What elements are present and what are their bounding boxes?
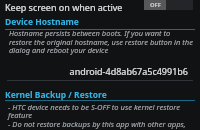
staticText: - HTC device needs to be S-OFF to use ke… (8, 102, 180, 112)
staticText: restore the original hostname, use resto… (9, 37, 193, 47)
staticText: dialog and reboot your device (9, 45, 109, 55)
staticText: feature (8, 110, 33, 120)
button[interactable]: Kernel Backup / Restore (0, 87, 200, 130)
staticText: Device Hostname (5, 16, 79, 28)
button[interactable]: Keep screen on when active, off (144, 0, 193, 10)
staticText: android-4d8ab67a5c4991b6 (0, 65, 188, 77)
staticText: Keep screen on when active (5, 1, 123, 13)
button[interactable]: android-4d8ab67a5c4991b6 (0, 60, 200, 78)
button[interactable]: Device Hostname (0, 14, 200, 58)
button[interactable]: Keep screen on when active (0, 0, 200, 13)
staticText: OFF (150, 1, 161, 9)
staticText: Hostname persists between boots. If you … (9, 28, 171, 38)
staticText: Kernel Backup / Restore (5, 89, 107, 101)
staticText: - Do not restore backups by this app wit… (8, 119, 186, 129)
